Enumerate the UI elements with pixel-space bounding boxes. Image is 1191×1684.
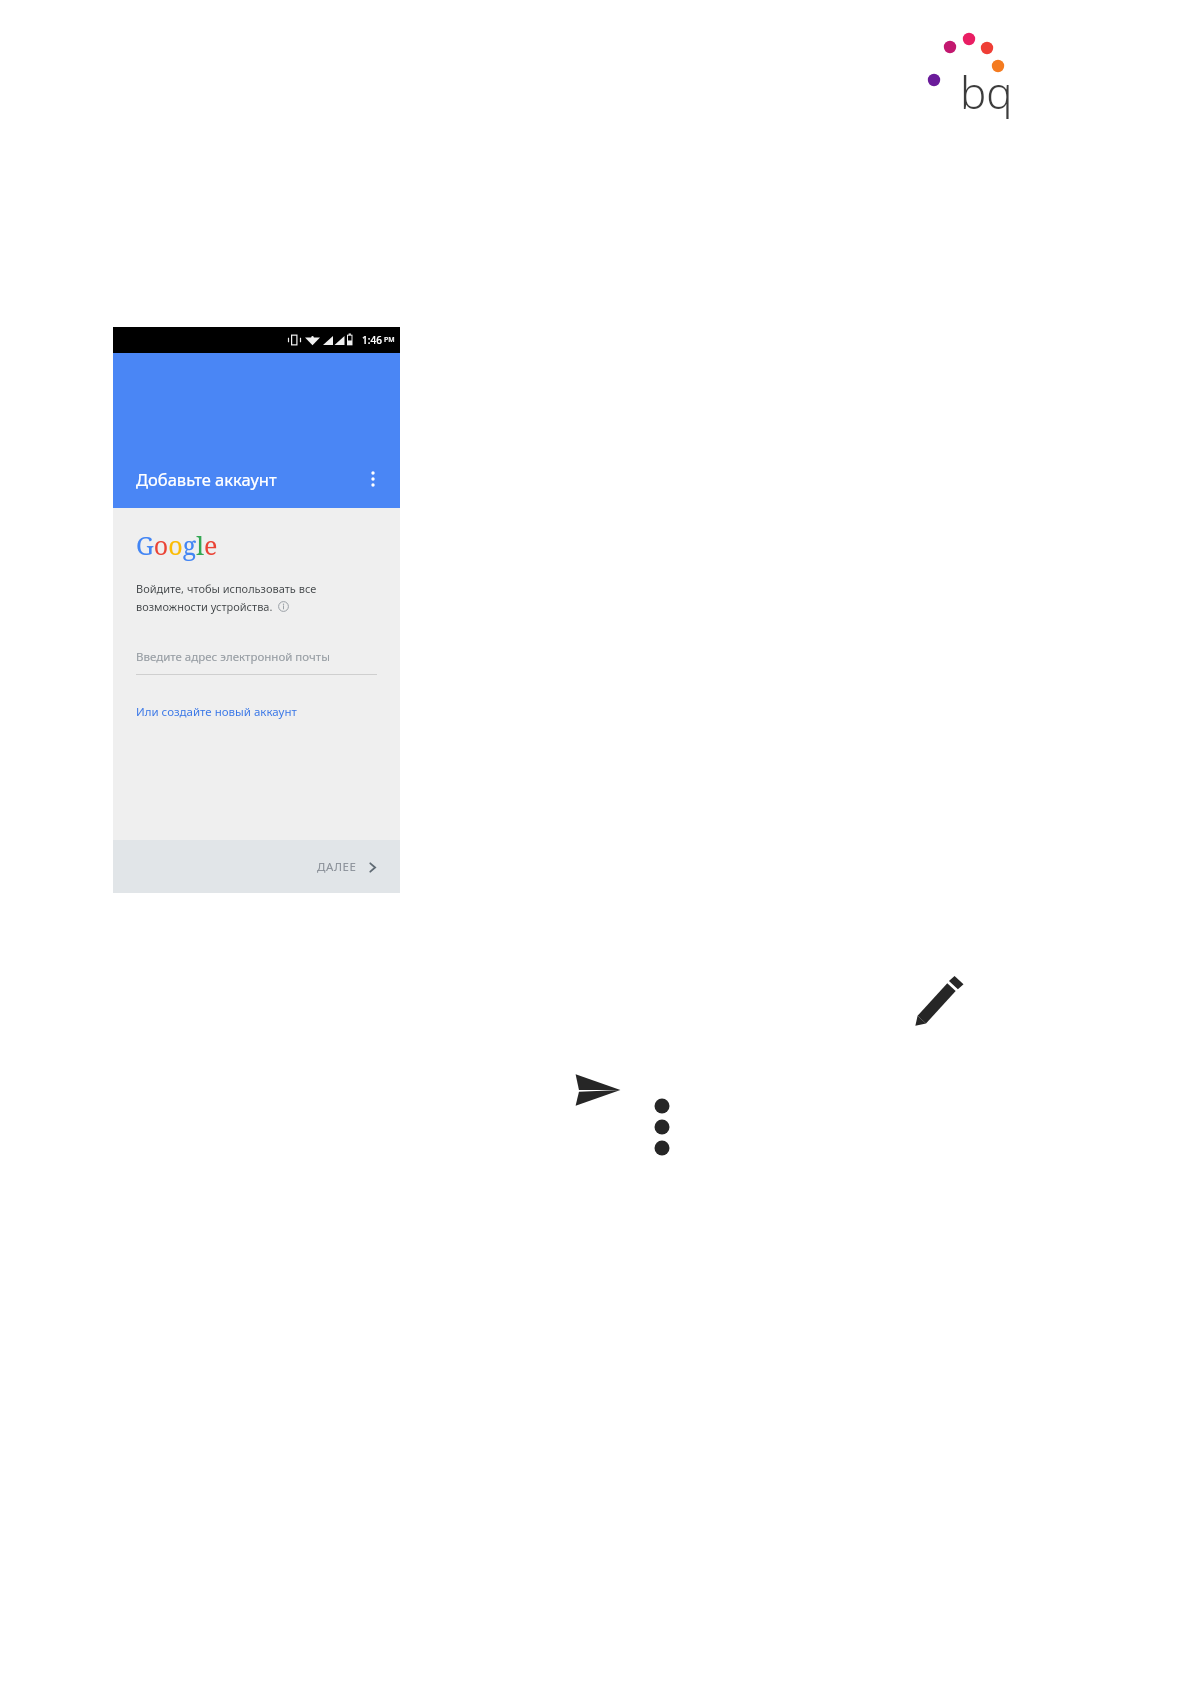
button[interactable]: ДАЛЕЕ (309, 851, 386, 883)
button[interactable]: Введите адрес электронной почты (136, 649, 377, 675)
staticText: Или создайте новый аккаунт (136, 704, 297, 720)
button[interactable]: Send (570, 1062, 626, 1118)
button[interactable]: Edit (912, 972, 968, 1028)
staticText: Введите адрес электронной почты (136, 649, 330, 665)
staticText: Google (136, 528, 218, 562)
staticText: PM (384, 335, 395, 345)
staticText: возможности устройства. (136, 599, 273, 614)
button[interactable]: More information (278, 601, 289, 612)
staticText: bq (960, 62, 1013, 122)
button[interactable]: More options (362, 466, 384, 492)
button[interactable]: More options (645, 1092, 679, 1162)
staticText: ДАЛЕЕ (317, 859, 357, 875)
button[interactable]: Или создайте новый аккаунт (136, 704, 297, 720)
staticText: Войдите, чтобы использовать все (136, 581, 317, 596)
staticText: Добавьте аккаунт (136, 468, 362, 490)
staticText: 1:46 (362, 333, 382, 347)
other: bq logo (918, 18, 1018, 110)
